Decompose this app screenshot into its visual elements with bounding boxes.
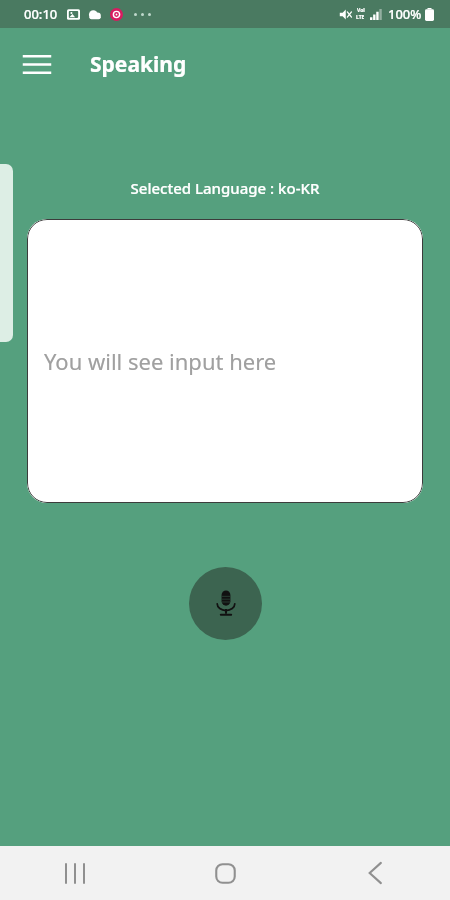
staticText: Speaking [90,50,187,79]
staticText: 00:10 [24,5,58,23]
button[interactable]: Recent apps [0,846,150,900]
button[interactable]: You will see input here [27,219,423,503]
staticText: 100% [388,5,422,23]
button[interactable]: Home [150,846,300,900]
staticText: Vol [357,7,365,14]
staticText: Selected Language : ko-KR [0,178,450,198]
staticText: You will see input here [44,346,277,376]
button[interactable]: Open navigation menu [14,41,60,87]
button[interactable]: Back [300,846,450,900]
staticText: LTE [356,14,365,21]
button[interactable]: Start speech recognition [189,567,262,640]
